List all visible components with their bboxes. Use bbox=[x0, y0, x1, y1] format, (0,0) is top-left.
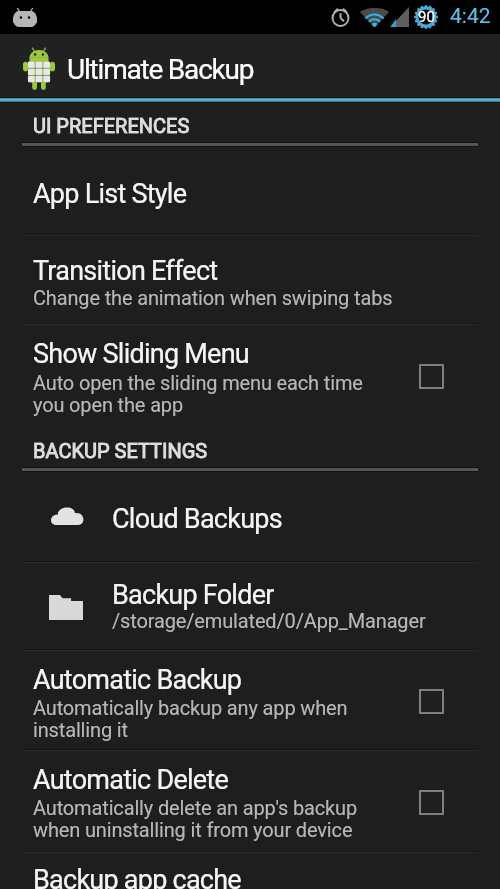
staticText: Automatic Delete bbox=[33, 764, 228, 796]
button[interactable]: Toggle bbox=[406, 777, 456, 827]
staticText: Backup app cache bbox=[33, 864, 241, 889]
other: Cloud bbox=[51, 506, 83, 525]
other: Alarm set bbox=[330, 6, 351, 27]
other: Folder bbox=[49, 595, 83, 620]
staticText: Automatically backup any app when instal… bbox=[33, 696, 348, 742]
button[interactable]: Ultimate Backup bbox=[0, 34, 500, 98]
button[interactable]: App List Style bbox=[0, 145, 500, 235]
button[interactable]: Folder bbox=[0, 563, 500, 650]
button[interactable]: Toggle bbox=[406, 351, 456, 401]
staticText: Cloud Backups bbox=[112, 503, 282, 535]
staticText: Auto open the sliding menu each time you… bbox=[33, 371, 363, 417]
button[interactable]: Transition Effect bbox=[0, 236, 500, 324]
button[interactable]: Backup app cache bbox=[0, 853, 500, 889]
staticText: Backup Folder bbox=[112, 579, 274, 611]
button[interactable]: Automatic Backup bbox=[0, 651, 500, 750]
button[interactable]: Cloud bbox=[0, 471, 500, 562]
staticText: Transition Effect bbox=[33, 255, 218, 287]
staticText: Ultimate Backup bbox=[67, 53, 254, 86]
staticText: 4:42 bbox=[450, 4, 491, 29]
staticText: Automatically delete an app's backup whe… bbox=[33, 796, 358, 842]
other: Wi-Fi signal bbox=[360, 7, 389, 27]
staticText: UI PREFERENCES bbox=[33, 114, 190, 137]
staticText: App List Style bbox=[33, 178, 187, 210]
staticText: 90 bbox=[418, 8, 435, 26]
staticText: BACKUP SETTINGS bbox=[33, 439, 208, 462]
other: Mobile signal bbox=[390, 7, 409, 27]
staticText: /storage/emulated/0/App_Manager bbox=[112, 609, 426, 632]
staticText: Show Sliding Menu bbox=[33, 338, 249, 370]
staticText: Automatic Backup bbox=[33, 664, 242, 696]
button[interactable]: Toggle bbox=[406, 676, 456, 726]
staticText: Change the animation when swiping tabs bbox=[33, 286, 393, 309]
button[interactable]: Show Sliding Menu bbox=[0, 325, 500, 425]
button[interactable]: Automatic Delete bbox=[0, 751, 500, 852]
other: Android notification bbox=[13, 8, 37, 27]
